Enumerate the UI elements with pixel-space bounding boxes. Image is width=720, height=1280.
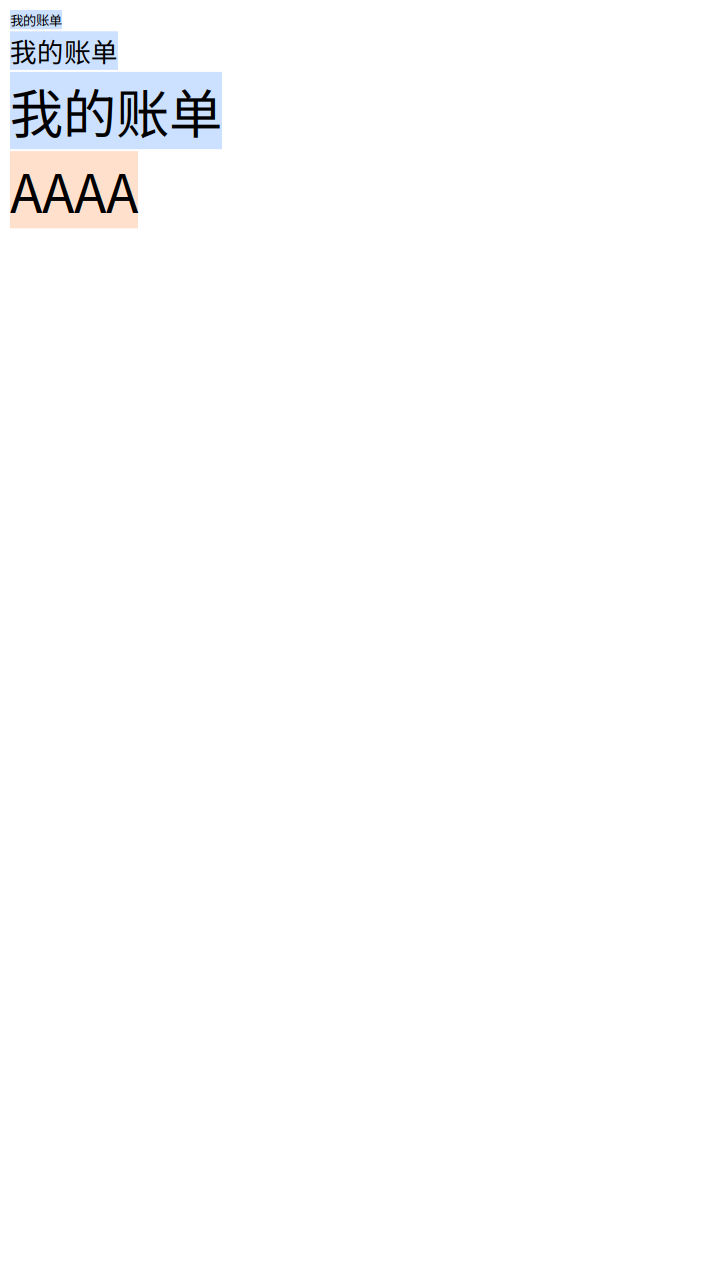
staticText: 我的账单 xyxy=(10,10,62,29)
staticText: AAAA xyxy=(10,151,138,228)
staticText: 我的账单 xyxy=(10,72,222,149)
staticText: 我的账单 xyxy=(10,31,118,70)
